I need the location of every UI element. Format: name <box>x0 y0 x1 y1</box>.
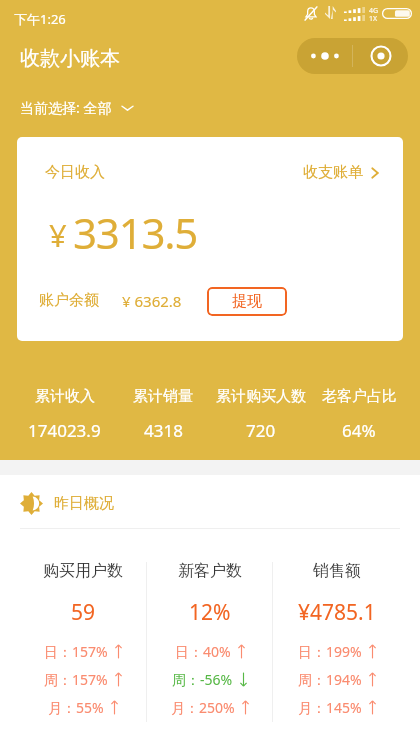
staticText: 当前选择: 全部 <box>20 98 112 117</box>
staticText: 收款小账本 <box>20 46 120 71</box>
button[interactable]: 收支账单 <box>299 161 383 184</box>
button[interactable]: More options <box>297 38 353 74</box>
button[interactable]: 老客户占比 <box>310 387 408 442</box>
staticText: 老客户占比 <box>322 387 397 406</box>
staticText: 今日收入 <box>45 163 105 182</box>
staticText: 昨日概况 <box>54 494 114 513</box>
staticText: 收支账单 <box>303 163 363 182</box>
staticText: ¥4785.1 <box>298 598 376 627</box>
staticText: 12% <box>189 598 231 627</box>
staticText: 周：194% <box>298 670 362 689</box>
staticText: ¥ 6362.8 <box>122 291 182 311</box>
staticText: 月：145% <box>298 698 362 717</box>
button[interactable]: 销售额 <box>273 549 400 721</box>
staticText: 账户余额 <box>39 291 99 310</box>
button[interactable]: Close mini program <box>353 38 408 74</box>
button[interactable]: 累计收入 <box>15 387 114 442</box>
button[interactable]: 新客户数 <box>146 549 273 721</box>
staticText: 4G <box>369 6 379 16</box>
staticText: 月：250% <box>171 698 235 717</box>
button[interactable]: 累计购买人数 <box>212 387 310 442</box>
staticText: 3313.5 <box>73 204 198 261</box>
button[interactable]: 提现 <box>207 287 287 316</box>
button[interactable]: 购买用户数 <box>20 549 146 721</box>
staticText: 下午1:26 <box>14 10 66 28</box>
staticText: 1X <box>369 14 378 24</box>
staticText: 月：55% <box>48 698 104 717</box>
button[interactable]: 当前选择: 全部 <box>16 94 138 121</box>
staticText: 4318 <box>144 419 183 442</box>
staticText: 新客户数 <box>178 561 242 581</box>
staticText: 累计销量 <box>133 387 193 406</box>
staticText: 59 <box>71 598 96 627</box>
staticText: 周：-56% <box>172 670 233 689</box>
staticText: 日：40% <box>175 642 231 661</box>
button[interactable]: 累计销量 <box>114 387 212 442</box>
staticText: 720 <box>246 419 276 442</box>
staticText: 174023.9 <box>28 419 101 442</box>
staticText: 累计购买人数 <box>216 387 306 406</box>
staticText: 日：157% <box>44 642 108 661</box>
staticText: 周：157% <box>44 670 108 689</box>
staticText: 日：199% <box>298 642 362 661</box>
staticText: 购买用户数 <box>43 561 123 581</box>
staticText: 累计收入 <box>35 387 95 406</box>
staticText: ¥ <box>49 214 67 256</box>
staticText: 64% <box>342 419 376 442</box>
staticText: 销售额 <box>313 561 361 581</box>
staticText: 提现 <box>232 292 262 311</box>
